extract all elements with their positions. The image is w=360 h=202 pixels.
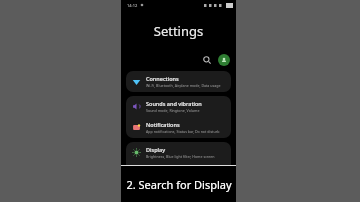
staticText: Brightness, Blue light filter, Home scre… bbox=[146, 154, 215, 159]
staticText: 14:12 bbox=[127, 3, 138, 8]
staticText: App notifications, Status bar, Do not di… bbox=[146, 129, 220, 134]
staticText: Wi-Fi, Bluetooth, Airplane mode, Data us… bbox=[146, 83, 221, 88]
staticText: Connections bbox=[146, 75, 179, 82]
button[interactable]: Sounds and vibration bbox=[126, 96, 231, 117]
staticText: Settings bbox=[121, 22, 236, 40]
button[interactable]: Account bbox=[218, 54, 230, 66]
staticText: 2. Search for Display bbox=[126, 177, 232, 192]
staticText: Notifications bbox=[146, 121, 180, 128]
staticText: Sounds and vibration bbox=[146, 100, 202, 107]
button[interactable]: Notifications bbox=[126, 117, 231, 138]
button[interactable]: Search bbox=[200, 53, 214, 67]
button[interactable]: Connections bbox=[126, 71, 231, 92]
button[interactable]: Wallpaper bbox=[126, 163, 231, 184]
staticText: Sound mode, Ringtone, Volume bbox=[146, 108, 200, 113]
staticText: Display bbox=[146, 146, 166, 153]
button[interactable]: Display bbox=[126, 142, 231, 163]
